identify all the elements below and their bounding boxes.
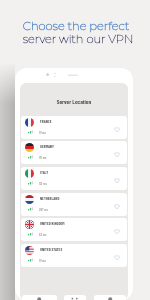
staticText: Choose the perfect (1, 19, 150, 35)
staticText: server with our VPN (3, 32, 150, 48)
button[interactable]: UNITED KINGDOM (21, 218, 127, 241)
button[interactable]: Add to favourites (113, 227, 121, 235)
staticText: 91 ms (39, 258, 46, 262)
staticText: 287 ms (39, 207, 48, 211)
staticText: 78 ms (39, 155, 47, 159)
button[interactable]: Add to favourites (113, 253, 121, 261)
button[interactable]: NETHERLAND (21, 193, 127, 216)
staticText: 91 ms (39, 130, 46, 134)
staticText: UNITED STATES (40, 247, 63, 252)
staticText: ITALY (40, 170, 49, 175)
staticText: Server Location (20, 98, 128, 108)
staticText: NETHERLAND (40, 196, 60, 201)
button[interactable]: Servers (64, 295, 86, 300)
staticText: FRANCE (40, 119, 52, 124)
button[interactable]: FRANCE (21, 116, 127, 139)
button[interactable]: ITALY (21, 167, 127, 190)
staticText: GERMANY (40, 144, 54, 149)
button[interactable]: Add to favourites (113, 125, 121, 133)
button[interactable]: GERMANY (21, 141, 127, 164)
button[interactable]: Add to favourites (113, 202, 121, 210)
button[interactable]: Home (22, 295, 57, 300)
staticText: 63 ms (39, 232, 47, 236)
staticText: UNITED KINGDOM (40, 221, 65, 226)
button[interactable]: Settings (94, 295, 126, 300)
button[interactable]: UNITED STATES (21, 244, 127, 267)
staticText: 121 ms (39, 181, 47, 185)
button[interactable]: Add to favourites (113, 176, 121, 184)
button[interactable]: Add to favourites (113, 150, 121, 158)
